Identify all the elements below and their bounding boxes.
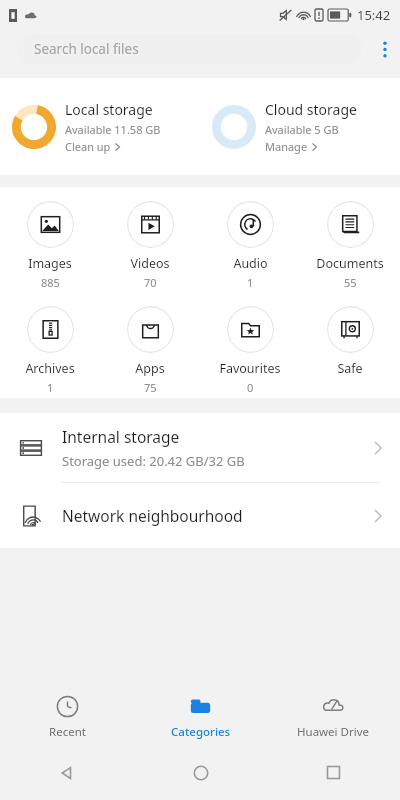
staticText: 885 [41, 275, 60, 290]
button[interactable]: Categories [134, 690, 267, 745]
button[interactable]: Back [0, 745, 134, 800]
button[interactable]: Network neighbourhood [0, 483, 400, 548]
staticText: 55 [344, 275, 357, 290]
staticText: Categories [171, 724, 231, 740]
button[interactable]: Cloud storage [200, 78, 400, 175]
staticText: Favourites [219, 360, 281, 377]
button[interactable]: Images [0, 201, 100, 290]
staticText: Clean up [65, 139, 111, 154]
button[interactable]: Documents [300, 201, 400, 290]
button[interactable]: Favourites [200, 306, 300, 395]
button[interactable]: Home [134, 745, 267, 800]
button[interactable]: Local storage [0, 78, 200, 175]
button[interactable]: Audio [200, 201, 300, 290]
staticText: Cloud storage [265, 100, 357, 119]
button[interactable]: Recent [0, 690, 134, 745]
staticText: Local storage [65, 100, 153, 119]
staticText: Audio [233, 255, 268, 272]
staticText: Documents [316, 255, 384, 272]
staticText: 0 [247, 380, 254, 395]
staticText: Videos [130, 255, 170, 272]
staticText: Storage used: 20.42 GB/32 GB [62, 452, 245, 470]
button[interactable]: More options [370, 34, 400, 64]
staticText: Apps [135, 360, 165, 377]
staticText: Manage [265, 139, 308, 154]
staticText: Available 5 GB [265, 122, 339, 137]
button[interactable]: Apps [100, 306, 200, 395]
staticText: 1 [247, 275, 254, 290]
staticText: Safe [337, 360, 363, 377]
button[interactable]: Recent apps [267, 745, 400, 800]
staticText: 15:42 [357, 6, 391, 24]
staticText: Archives [25, 360, 75, 377]
staticText: Images [28, 255, 72, 272]
staticText: Recent [49, 724, 86, 740]
staticText: 75 [144, 380, 157, 395]
button[interactable]: Huawei Drive [267, 690, 400, 745]
button[interactable]: Videos [100, 201, 200, 290]
button[interactable]: Search local files [18, 34, 362, 64]
staticText: Network neighbourhood [62, 505, 243, 526]
button[interactable]: Safe [300, 306, 400, 377]
staticText: 70 [144, 275, 157, 290]
button[interactable]: Internal storage [0, 413, 400, 482]
button[interactable]: Archives [0, 306, 100, 395]
staticText: Available 11.58 GB [65, 122, 161, 137]
staticText: Huawei Drive [297, 724, 370, 740]
staticText: Search local files [34, 40, 139, 58]
staticText: Internal storage [62, 426, 180, 447]
staticText: 1 [47, 380, 54, 395]
